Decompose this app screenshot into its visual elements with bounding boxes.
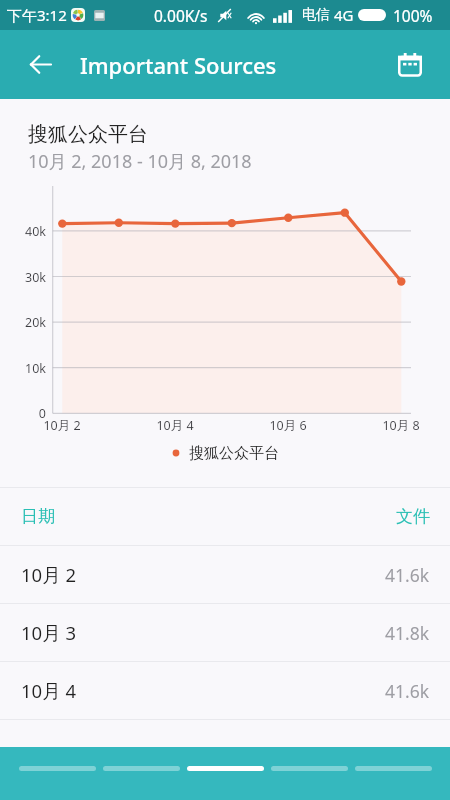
staticText: 10月 2 [21,562,77,587]
staticText: 100% [393,5,433,26]
staticText: 20k [25,314,46,331]
staticText: 下午3:12 [7,5,67,25]
button[interactable]: 10月 3 [0,604,450,661]
button[interactable]: 10月 2 [0,546,450,603]
staticText: 0 [38,405,46,422]
button[interactable]: Tab 2 [100,747,184,800]
staticText: Important Sources [80,50,277,80]
staticText: 搜狐公众平台 [189,444,279,463]
staticText: 41.8k [385,621,430,645]
button[interactable]: Back [18,42,63,87]
button[interactable]: Tab 3 [184,747,268,800]
staticText: 10月 8 [382,417,420,434]
staticText: 4G [334,5,354,25]
staticText: 30k [25,269,46,286]
staticText: 41.6k [385,679,430,703]
button[interactable]: 10月 4 [0,662,450,719]
staticText: 10月 6 [269,417,307,434]
staticText: 10月 2, 2018 - 10月 8, 2018 [28,149,252,174]
staticText: 10月 4 [21,678,77,703]
staticText: 41.6k [385,563,430,587]
staticText: 40k [25,223,46,240]
staticText: 10k [25,360,46,377]
staticText: 10月 3 [21,620,77,645]
staticText: 0.00K/s [154,5,208,26]
staticText: 文件 [396,506,430,527]
staticText: 搜狐公众平台 [28,122,148,147]
staticText: 10月 2 [43,417,81,434]
button[interactable]: Tab 1 [16,747,100,800]
staticText: 日期 [21,506,55,527]
button[interactable]: Tab 4 [268,747,352,800]
staticText: 10月 4 [156,417,194,434]
button[interactable]: Tab 5 [352,747,436,800]
staticText: 电信 [302,6,330,24]
button[interactable]: Calendar [387,42,432,87]
